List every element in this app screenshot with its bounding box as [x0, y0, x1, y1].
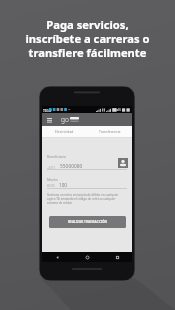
staticText: BOB — [47, 183, 55, 188]
staticText: Paga servicios, inscríbete a carreras o … — [25, 17, 150, 60]
staticText: 11:46 — [113, 108, 121, 112]
staticText: Monto — [47, 177, 58, 182]
staticText: Transferencia — [99, 129, 121, 134]
staticText: go — [61, 115, 69, 124]
staticText: +591 — [47, 165, 56, 170]
staticText: Gestiona un retiro sin tarjeta de débito… — [47, 193, 120, 205]
staticText: Electricidad — [55, 129, 74, 134]
staticText: 55000080 — [60, 163, 83, 170]
button[interactable]: Back — [42, 252, 72, 262]
button[interactable]: Choose contact — [118, 158, 128, 168]
button[interactable]: Open navigation menu — [42, 113, 132, 126]
staticText: REALIZAR TRANSACCIÓN — [68, 220, 108, 224]
staticText: Beneficiario — [47, 154, 66, 159]
button[interactable]: Recent apps — [102, 252, 132, 262]
button[interactable]: Home — [72, 252, 102, 262]
staticText: 100 — [59, 182, 67, 188]
button[interactable]: Electricidad — [42, 126, 87, 137]
button[interactable]: Open navigation menu — [44, 113, 54, 126]
staticText: TIGO — [43, 108, 52, 113]
button[interactable]: Transferencia — [87, 126, 132, 137]
button[interactable]: REALIZAR TRANSACCIÓN — [49, 216, 126, 228]
